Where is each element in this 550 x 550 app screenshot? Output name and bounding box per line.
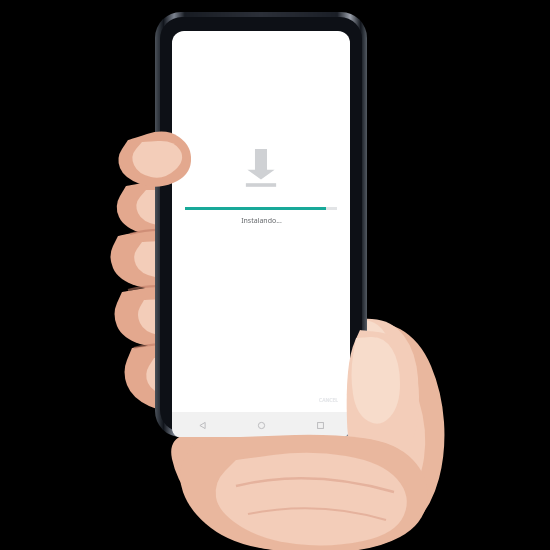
button[interactable]: Recent apps [291, 412, 350, 437]
other: Downloading [244, 149, 278, 187]
button[interactable]: CANCEL [316, 395, 341, 406]
staticText: CANCEL [319, 397, 338, 404]
staticText: Instalando... [241, 216, 282, 226]
button[interactable]: Home [232, 412, 291, 437]
button[interactable]: Back [172, 412, 232, 437]
